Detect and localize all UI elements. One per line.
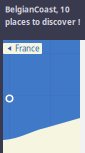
staticText: France bbox=[15, 43, 40, 54]
button[interactable]: France bbox=[3, 43, 42, 54]
staticText: places to discover ! bbox=[5, 17, 80, 27]
staticText: BelgianCoast, 10 bbox=[5, 4, 70, 15]
button[interactable]: Recenter map bbox=[5, 94, 14, 103]
